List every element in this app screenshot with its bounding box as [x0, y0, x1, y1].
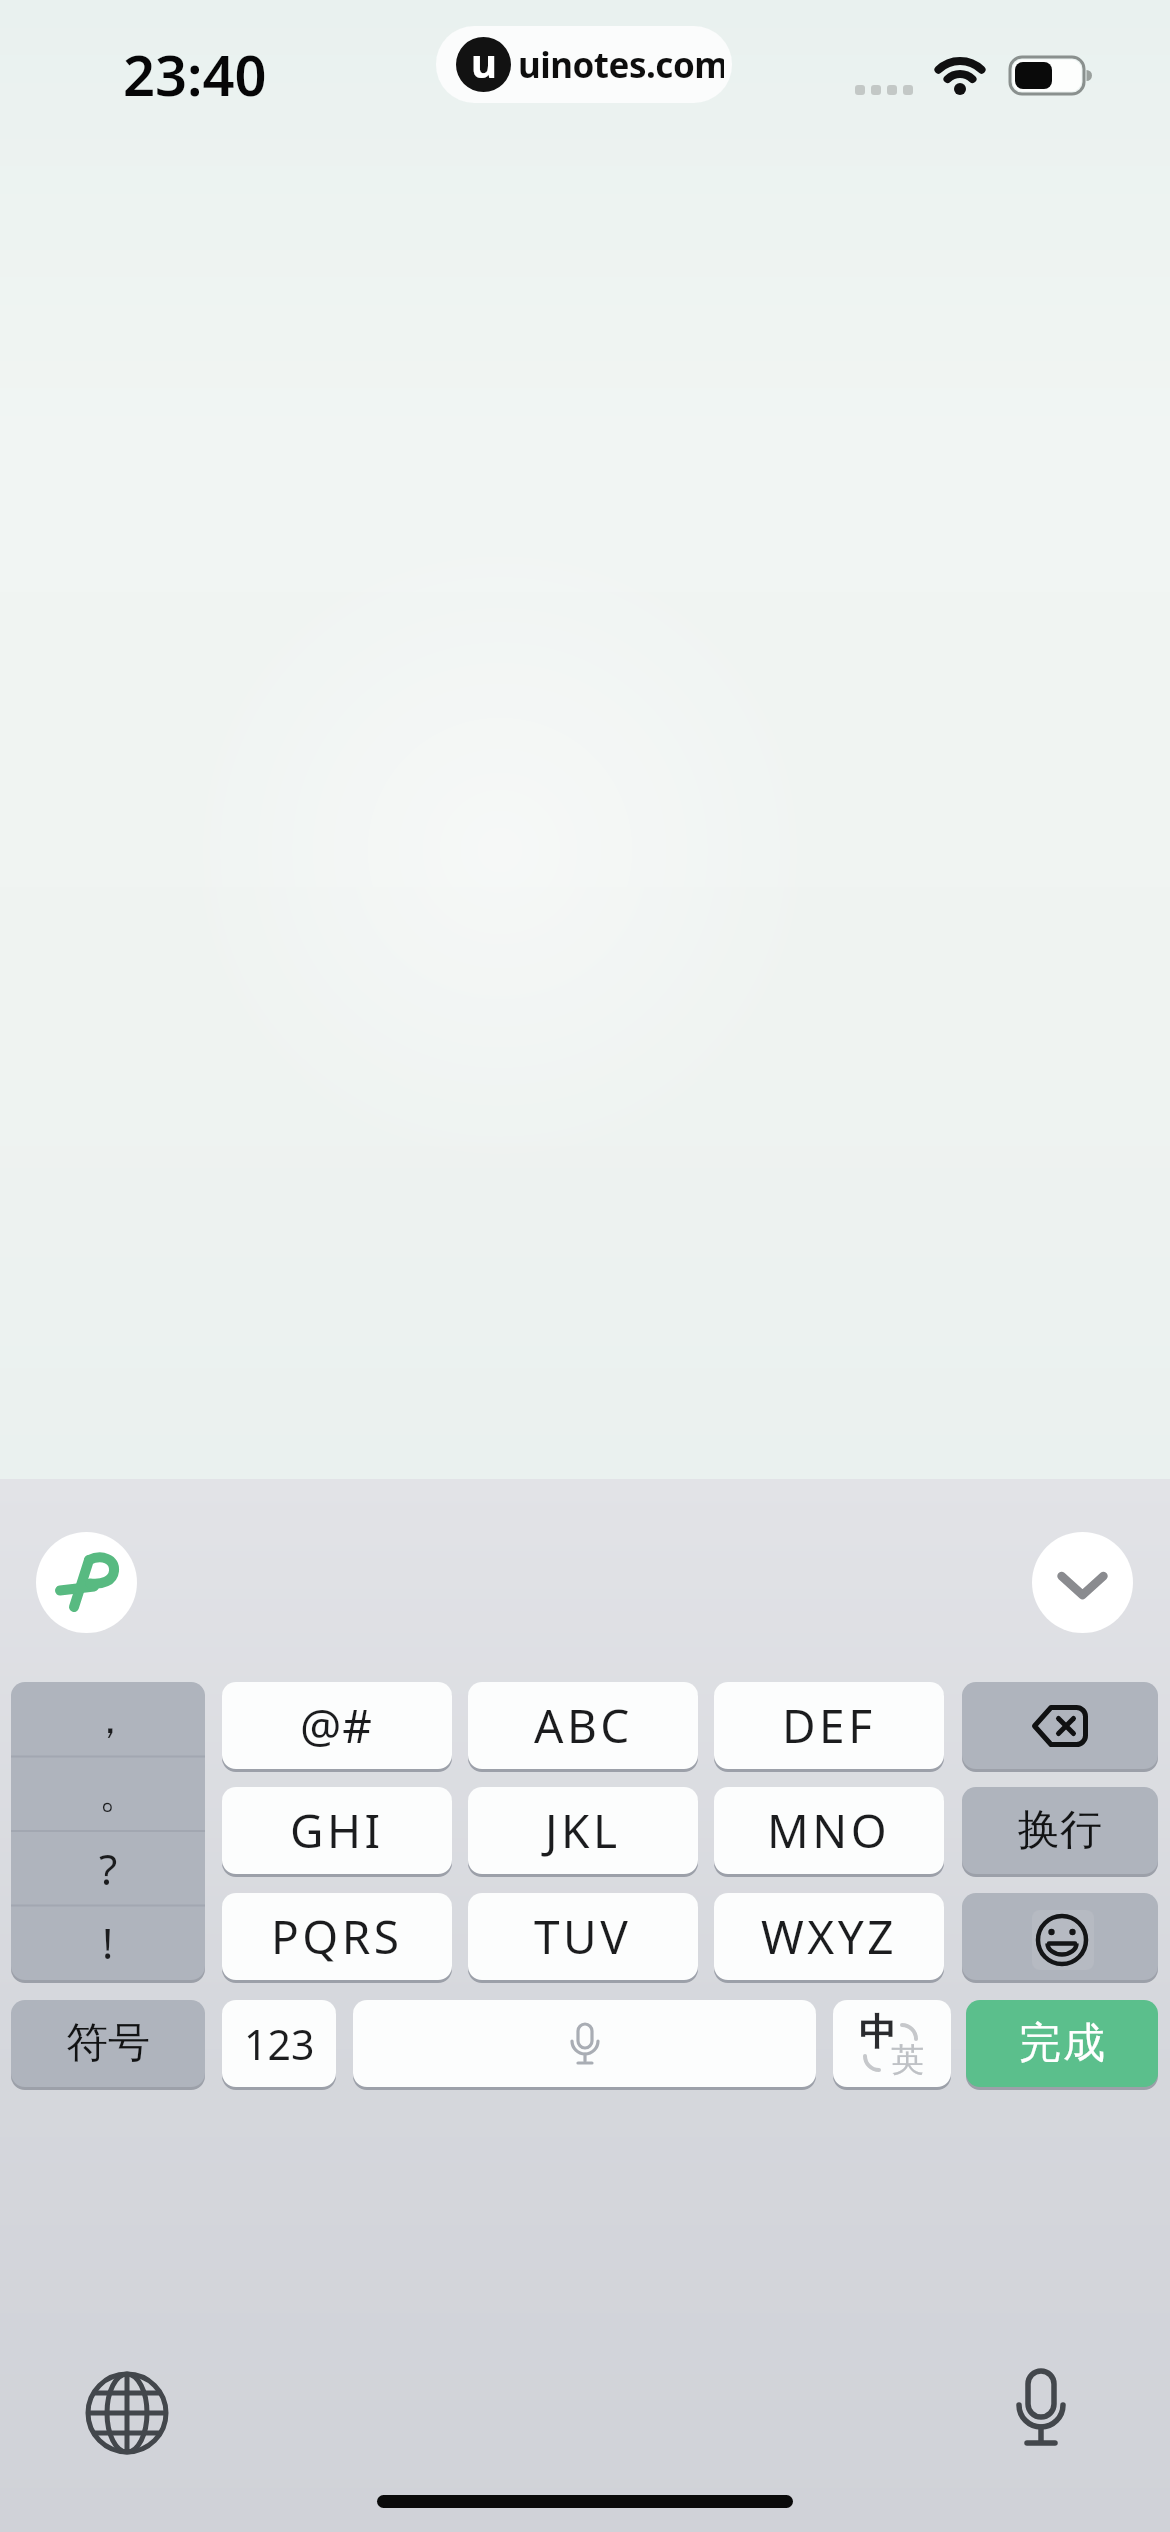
button[interactable] [60, 2346, 194, 2480]
staticText: u [471, 37, 497, 89]
button[interactable]: 中 [833, 2000, 951, 2087]
button[interactable] [962, 1893, 1158, 1980]
button[interactable]: MNO [714, 1787, 944, 1874]
staticText: DEF [782, 1694, 876, 1757]
button[interactable]: ， [11, 1682, 205, 1980]
button[interactable]: GHI [222, 1787, 452, 1874]
button[interactable]: 123 [222, 2000, 336, 2087]
staticText: 英 [891, 2039, 924, 2081]
staticText: uinotes.com [518, 41, 724, 89]
staticText: ABC [534, 1694, 633, 1757]
button[interactable]: JKL [468, 1787, 698, 1874]
staticText: ， [90, 1694, 130, 1744]
staticText: TUV [534, 1905, 632, 1968]
button[interactable]: 完成 [966, 2000, 1158, 2087]
button[interactable] [962, 1682, 1158, 1769]
button[interactable]: @# [222, 1682, 452, 1769]
button[interactable]: DEF [714, 1682, 944, 1769]
button[interactable] [974, 2346, 1108, 2480]
staticText: 符号 [66, 2017, 150, 2070]
staticText: JKL [545, 1799, 621, 1862]
button[interactable] [353, 2000, 816, 2087]
staticText: GHI [290, 1799, 384, 1862]
staticText: ? [99, 1840, 118, 1897]
button[interactable] [1032, 1532, 1133, 1633]
staticText: 23:40 [123, 36, 267, 102]
staticText: 。 [99, 1768, 139, 1818]
staticText: 换行 [1018, 1804, 1102, 1857]
button[interactable]: u [436, 26, 732, 103]
button[interactable]: ABC [468, 1682, 698, 1769]
button[interactable]: WXYZ [714, 1893, 944, 1980]
button[interactable]: TUV [468, 1893, 698, 1980]
staticText: @# [300, 1694, 374, 1757]
staticText: PQRS [271, 1905, 403, 1968]
staticText: 123 [244, 2016, 315, 2072]
button[interactable]: 符号 [11, 2000, 205, 2087]
staticText: 中 [859, 2009, 896, 2056]
button[interactable]: 换行 [962, 1787, 1158, 1874]
button[interactable]: PQRS [222, 1893, 452, 1980]
staticText: MNO [767, 1799, 891, 1862]
staticText: WXYZ [761, 1905, 898, 1968]
button[interactable] [36, 1532, 137, 1633]
staticText: 完成 [1018, 2017, 1106, 2070]
staticText: ! [102, 1914, 114, 1971]
